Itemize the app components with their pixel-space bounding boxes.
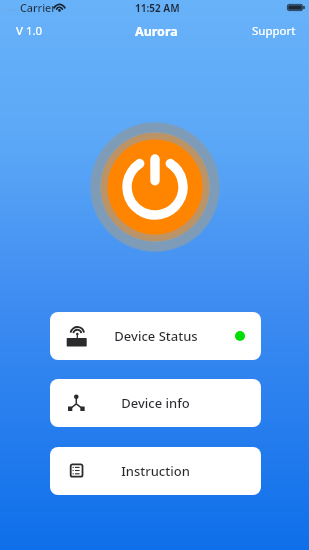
staticText: Device Status [114,327,198,345]
button[interactable]: Device info [50,379,261,427]
staticText: Support [252,23,296,39]
button[interactable]: Support [252,23,296,39]
button[interactable]: Power [85,117,225,257]
button[interactable]: Instruction [50,447,261,495]
staticText: Carrier [20,0,56,15]
staticText: Aurora [135,23,178,40]
staticText: 11:52 AM [135,1,180,15]
button[interactable]: Device Status [50,312,261,360]
button[interactable]: V 1.0 [16,23,43,39]
staticText: Device info [121,394,190,412]
staticText: Instruction [121,462,190,480]
staticText: V 1.0 [16,23,43,39]
